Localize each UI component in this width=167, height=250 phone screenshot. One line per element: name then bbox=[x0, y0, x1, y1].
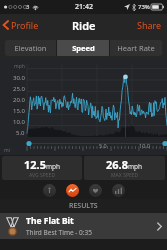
staticText: mph bbox=[14, 63, 25, 70]
button[interactable]: Map bbox=[43, 184, 56, 197]
staticText: Speed bbox=[72, 43, 95, 53]
staticText: 73% bbox=[138, 3, 150, 11]
staticText: MAX SPEED bbox=[111, 172, 139, 179]
staticText: Share bbox=[137, 19, 162, 31]
button[interactable]: Share bbox=[132, 15, 167, 35]
button[interactable]: 12.5 bbox=[2, 156, 82, 180]
button[interactable]: Stats bbox=[112, 184, 125, 197]
button[interactable]: Heart rate bbox=[89, 184, 102, 197]
staticText: mph bbox=[128, 162, 143, 171]
button[interactable]: The Flat Bit bbox=[0, 213, 167, 239]
staticText: 10.0 bbox=[139, 142, 150, 149]
staticText: Profile bbox=[11, 19, 39, 31]
staticText: 30.0 bbox=[13, 74, 25, 82]
staticText: Elevation bbox=[14, 43, 47, 53]
staticText: Third Best Time - 0:35 bbox=[26, 228, 92, 237]
staticText: 21:42 bbox=[75, 2, 93, 12]
button[interactable]: Speed bbox=[57, 40, 109, 56]
staticText: 3 bbox=[26, 3, 30, 11]
button[interactable]: Profile bbox=[0, 16, 45, 34]
staticText: 5.0 bbox=[99, 142, 107, 149]
staticText: Ride bbox=[72, 18, 96, 33]
button[interactable]: Heart Rate bbox=[110, 40, 162, 56]
staticText: The Flat Bit bbox=[26, 215, 74, 227]
button[interactable]: Elevation bbox=[5, 40, 56, 56]
staticText: 26.8 bbox=[106, 157, 128, 172]
staticText: Heart Rate bbox=[117, 43, 155, 53]
staticText: RESULTS bbox=[69, 201, 98, 211]
staticText: 20.0 bbox=[13, 96, 25, 104]
staticText: 12.5 bbox=[24, 157, 46, 172]
button[interactable]: Speed chart bbox=[66, 184, 79, 197]
staticText: 15.0 bbox=[13, 107, 25, 115]
staticText: AVG SPEED bbox=[29, 172, 56, 179]
staticText: mph bbox=[46, 162, 61, 171]
staticText: 10.0 bbox=[13, 118, 25, 126]
staticText: 5.0 bbox=[16, 129, 25, 137]
button[interactable]: 26.8 bbox=[84, 156, 165, 180]
staticText: mi bbox=[4, 147, 10, 154]
staticText: 25.0 bbox=[13, 85, 25, 93]
